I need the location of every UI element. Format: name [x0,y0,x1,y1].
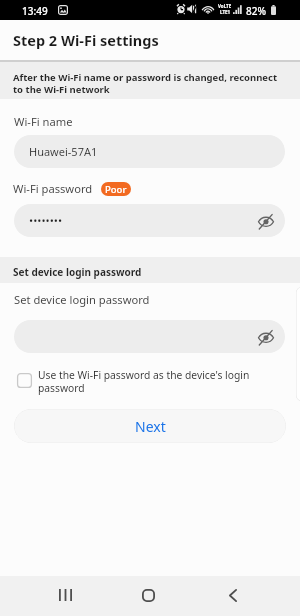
button[interactable]: Show password [256,211,276,231]
staticText: Wi-Fi name [14,114,73,129]
staticText: Huawei-57A1 [29,144,98,159]
button[interactable]: Show password [14,320,285,353]
button[interactable]: Show password [256,327,276,347]
staticText: Set device login password [13,265,142,279]
staticText: LTE1 [220,9,231,15]
staticText: 82% [246,4,266,18]
staticText: Step 2 Wi-Fi settings [13,30,159,50]
button[interactable]: Huawei-57A1 [14,135,285,168]
button[interactable]: Use the Wi-Fi password as the device's l… [13,368,287,395]
staticText: 13:49 [22,4,48,18]
button[interactable]: Back [213,575,253,615]
staticText: After the Wi-Fi name or password is chan… [13,71,282,96]
staticText: Set device login password [14,292,150,307]
button[interactable]: Recent apps [45,575,85,615]
button[interactable]: Home [128,575,168,615]
staticText: •••••••• [29,213,63,228]
button[interactable]: •••••••• [14,204,285,237]
staticText: Poor [105,183,127,196]
staticText: Wi-Fi password [13,181,93,196]
staticText: Use the Wi-Fi password as the device's l… [38,368,287,395]
staticText: VoLTE [218,3,232,9]
staticText: Next [135,417,166,436]
button[interactable]: Next [14,409,286,443]
